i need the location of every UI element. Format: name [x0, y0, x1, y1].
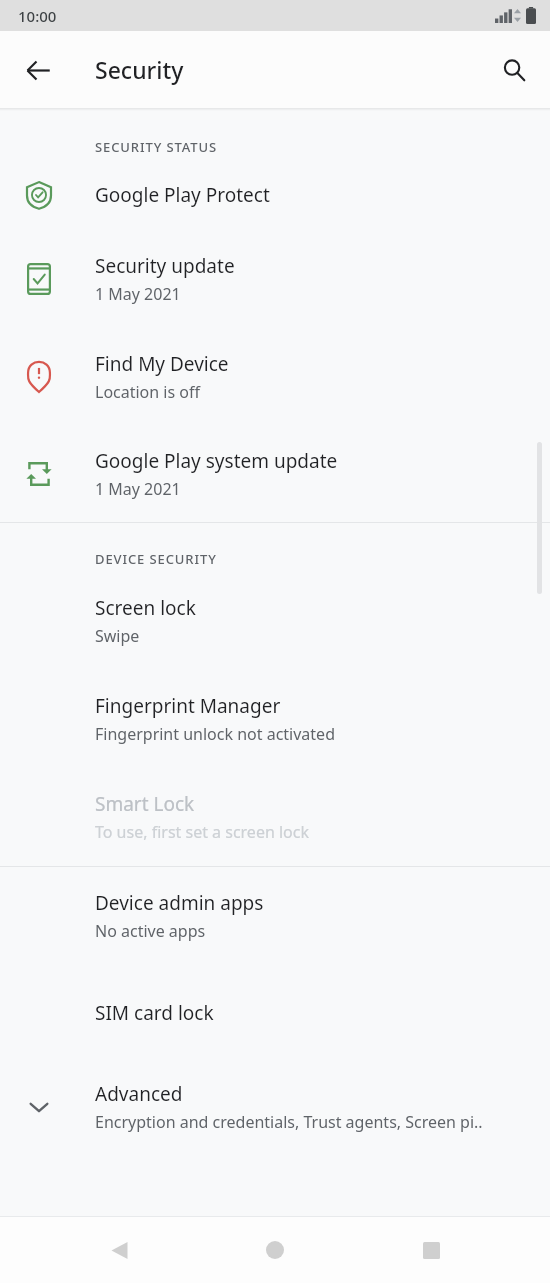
staticText: Device admin apps	[95, 890, 264, 916]
button[interactable]: Back	[91, 1222, 147, 1278]
button[interactable]: Smart Lock	[0, 768, 550, 866]
button[interactable]: Fingerprint Manager	[0, 670, 550, 768]
button[interactable]: Recent apps	[403, 1222, 459, 1278]
staticText: To use, first set a screen lock	[95, 821, 310, 843]
button[interactable]: Screen lock	[0, 572, 550, 670]
staticText: Security update	[95, 253, 235, 279]
staticText: Screen lock	[95, 595, 196, 621]
staticText: Google Play Protect	[95, 182, 270, 208]
staticText: Fingerprint unlock not activated	[95, 723, 335, 745]
button[interactable]: Google Play Protect	[0, 160, 550, 230]
button[interactable]: Security update	[0, 230, 550, 328]
staticText: Smart Lock	[95, 791, 195, 817]
staticText: Fingerprint Manager	[95, 693, 281, 719]
button[interactable]: Device admin apps	[0, 867, 550, 965]
staticText: 1 May 2021	[95, 283, 181, 305]
staticText: Google Play system update	[95, 448, 338, 474]
staticText: 10:00	[18, 6, 57, 26]
button[interactable]: Home	[247, 1222, 303, 1278]
staticText: Security	[95, 54, 184, 85]
button[interactable]: SIM card lock	[0, 965, 550, 1061]
button[interactable]: Find My Device	[0, 328, 550, 426]
button[interactable]: Search	[490, 46, 538, 94]
staticText: Swipe	[95, 625, 140, 647]
button[interactable]: Google Play system update	[0, 426, 550, 522]
button[interactable]: Advanced	[0, 1061, 550, 1153]
staticText: SIM card lock	[95, 1000, 214, 1026]
button[interactable]: Back	[14, 46, 62, 94]
staticText: Advanced	[95, 1081, 183, 1107]
staticText: Encryption and credentials, Trust agents…	[95, 1111, 483, 1133]
staticText: SECURITY STATUS	[95, 138, 218, 156]
staticText: DEVICE SECURITY	[95, 550, 217, 568]
staticText: Location is off	[95, 381, 200, 403]
staticText: Find My Device	[95, 351, 229, 377]
staticText: No active apps	[95, 920, 206, 942]
staticText: 1 May 2021	[95, 478, 181, 500]
